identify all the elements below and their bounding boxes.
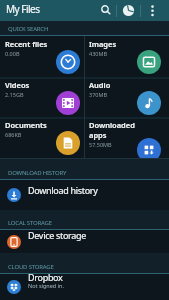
button[interactable]: Dropbox [0, 274, 169, 299]
button[interactable]: Audio [84, 78, 169, 118]
staticText: LOCAL STORAGE [8, 219, 52, 227]
staticText: DOWNLOAD HISTORY [8, 169, 67, 177]
staticText: Images [89, 39, 117, 49]
button[interactable]: Device storage [0, 230, 169, 253]
staticText: Videos [5, 80, 30, 90]
staticText: CLOUD STORAGE [8, 263, 54, 271]
staticText: 57.50MB [89, 141, 112, 148]
staticText: 430MB [89, 50, 108, 57]
button[interactable]: Recent files [0, 36, 84, 78]
button[interactable]: Downloaded [84, 118, 169, 158]
staticText: QUICK SEARCH [8, 25, 49, 33]
button[interactable]: Videos [0, 78, 84, 118]
button[interactable]: Download history [0, 180, 169, 210]
staticText: 2.15GB [5, 91, 24, 98]
button[interactable]: Images [84, 36, 169, 78]
staticText: My Files [6, 2, 40, 16]
staticText: 686KB [5, 131, 22, 138]
staticText: Recent files [5, 39, 48, 49]
button[interactable] [98, 0, 114, 21]
staticText: Download history [28, 184, 98, 196]
staticText: Not signed in. [28, 282, 64, 289]
button[interactable]: Documents [0, 118, 84, 158]
staticText: 370MB [89, 91, 108, 98]
staticText: Device storage [28, 229, 87, 241]
staticText: apps [89, 130, 107, 140]
staticText: Audio [89, 80, 111, 90]
staticText: Downloaded [89, 120, 135, 130]
staticText: 0.00B [5, 50, 20, 57]
button[interactable] [120, 0, 137, 21]
button[interactable] [147, 0, 158, 21]
staticText: Dropbox [28, 271, 63, 283]
staticText: Documents [5, 120, 47, 130]
